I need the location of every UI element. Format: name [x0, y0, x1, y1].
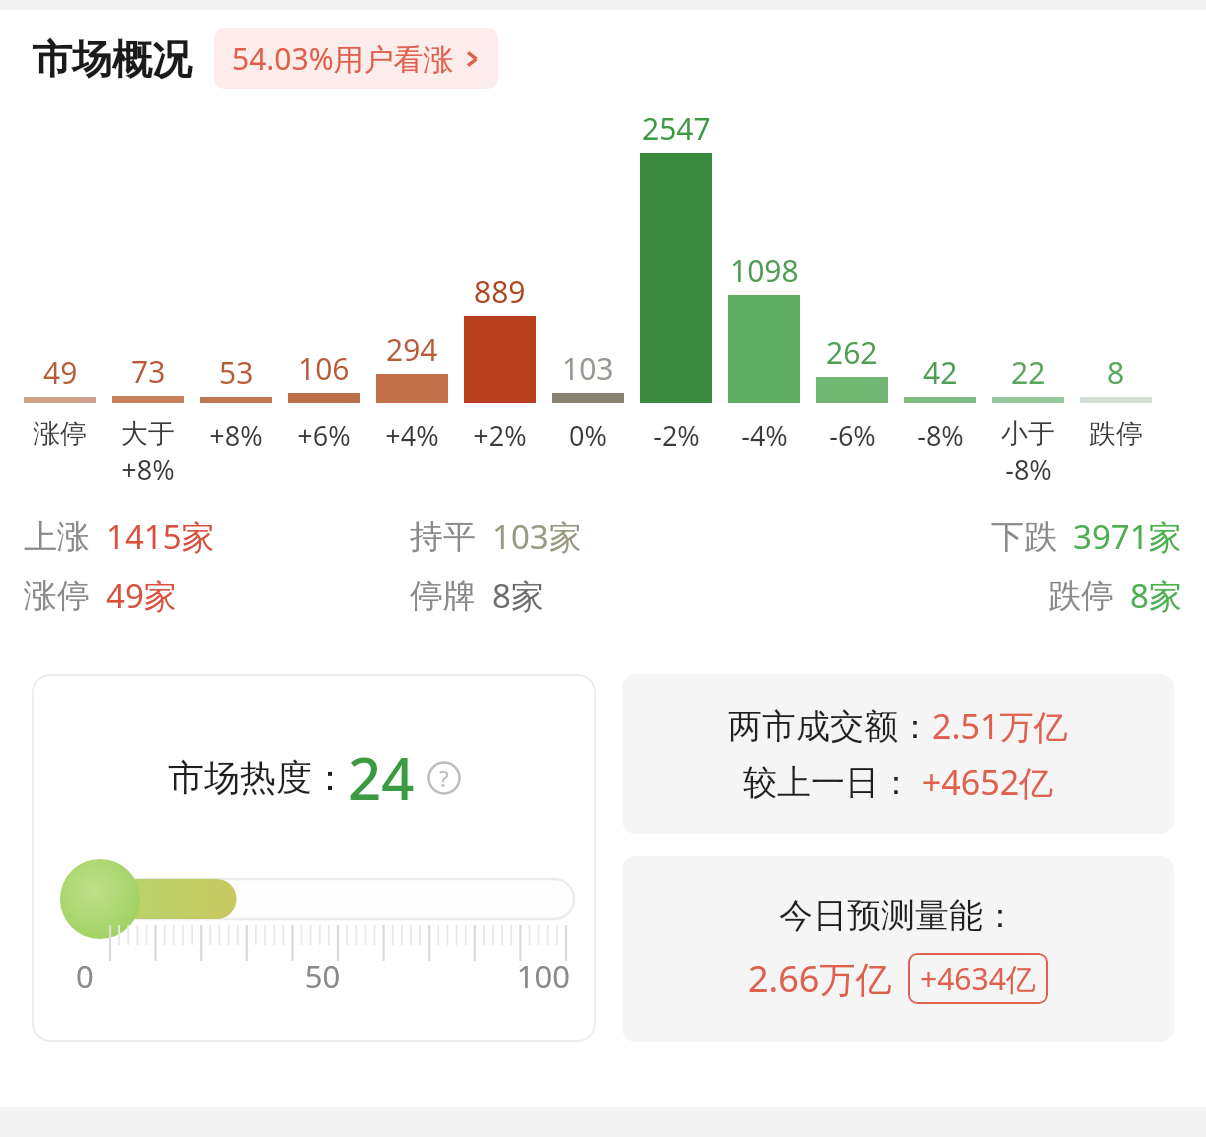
- staticText: 停牌: [410, 575, 476, 617]
- staticText: 小于: [1001, 417, 1055, 451]
- staticText: 22: [1011, 352, 1046, 393]
- staticText: 2547: [642, 108, 711, 149]
- staticText: ?: [439, 763, 449, 793]
- staticText: 跌停: [1089, 417, 1143, 451]
- staticText: +8%: [209, 417, 263, 454]
- staticText: 8家: [1130, 573, 1182, 618]
- staticText: 持平: [410, 516, 476, 558]
- staticText: 跌停: [1048, 575, 1114, 617]
- staticText: 8家: [492, 573, 544, 618]
- staticText: -8%: [1005, 451, 1052, 488]
- staticText: 大于: [121, 417, 175, 451]
- staticText: 两市成交额：: [728, 705, 932, 748]
- button[interactable]: 两市成交额：: [622, 674, 1174, 834]
- staticText: +6%: [297, 417, 351, 454]
- staticText: +4652亿: [913, 759, 1054, 805]
- staticText: 0: [76, 955, 240, 997]
- staticText: 54.03%用户看涨: [232, 38, 454, 79]
- staticText: 1415家: [106, 514, 215, 559]
- staticText: 0%: [569, 417, 607, 454]
- button[interactable]: 今日预测量能：: [622, 856, 1174, 1042]
- staticText: 49家: [106, 573, 177, 618]
- staticText: 上涨: [24, 516, 90, 558]
- staticText: 下跌: [991, 516, 1057, 558]
- staticText: -2%: [653, 417, 700, 454]
- staticText: 50: [240, 955, 405, 997]
- button[interactable]: 帮助说明: [427, 761, 461, 795]
- staticText: 市场概况: [32, 34, 192, 84]
- staticText: 73: [131, 351, 166, 392]
- staticText: -4%: [741, 417, 788, 454]
- button[interactable]: 市场热度：: [32, 674, 596, 1042]
- staticText: 262: [826, 332, 878, 373]
- staticText: -8%: [917, 417, 964, 454]
- button[interactable]: 54.03%用户看涨: [214, 28, 498, 89]
- staticText: 103: [562, 348, 614, 389]
- staticText: 42: [923, 352, 958, 393]
- staticText: 53: [219, 352, 254, 393]
- staticText: 市场热度：: [168, 755, 348, 800]
- staticText: +2%: [473, 417, 527, 454]
- staticText: 100: [405, 955, 570, 997]
- staticText: 103家: [492, 514, 582, 559]
- staticText: 294: [386, 329, 438, 370]
- staticText: +4634亿: [920, 958, 1036, 999]
- staticText: 106: [298, 348, 350, 389]
- staticText: 889: [474, 271, 526, 312]
- staticText: 8: [1107, 352, 1125, 393]
- staticText: 涨停: [24, 575, 90, 617]
- staticText: 1098: [730, 250, 799, 291]
- staticText: 2.51万亿: [932, 703, 1068, 749]
- staticText: 49: [43, 352, 78, 393]
- staticText: -6%: [829, 417, 876, 454]
- staticText: +8%: [121, 451, 175, 488]
- staticText: 涨停: [33, 417, 87, 451]
- staticText: 较上一日：: [743, 761, 913, 804]
- staticText: 3971家: [1073, 514, 1182, 559]
- staticText: +4%: [385, 417, 439, 454]
- staticText: 今日预测量能：: [779, 894, 1017, 937]
- staticText: 2.66万亿: [748, 954, 892, 1003]
- staticText: 24: [348, 738, 415, 817]
